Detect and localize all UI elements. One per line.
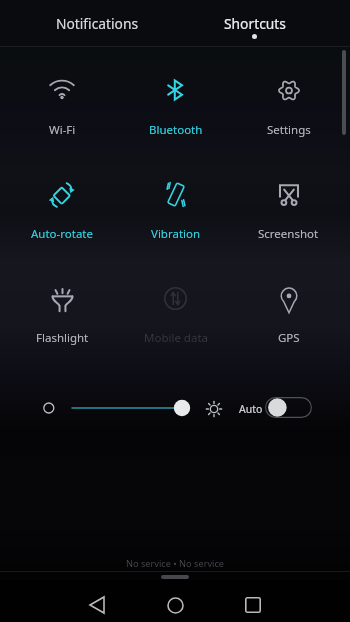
staticText: GPS xyxy=(278,330,300,346)
staticText: Screenshot xyxy=(258,226,319,242)
staticText: Shortcuts xyxy=(224,14,286,33)
button[interactable]: Screenshot xyxy=(232,166,345,252)
staticText: Auto xyxy=(239,402,263,416)
staticText: Mobile data xyxy=(144,330,208,346)
button[interactable]: Mobile data xyxy=(119,270,232,356)
button[interactable]: Bluetooth xyxy=(119,62,232,148)
staticText: Vibration xyxy=(151,226,201,242)
staticText: Settings xyxy=(267,122,311,138)
staticText: Flashlight xyxy=(36,330,89,346)
button[interactable]: Recents xyxy=(225,580,281,622)
staticText: No service • No service xyxy=(0,557,350,570)
staticText: Wi-Fi xyxy=(49,122,76,138)
button[interactable]: Vibration xyxy=(119,166,232,252)
staticText: Bluetooth xyxy=(149,122,203,138)
staticText: Auto-rotate xyxy=(31,226,93,242)
button[interactable]: Home xyxy=(147,580,203,622)
button[interactable]: Settings xyxy=(232,62,345,148)
button[interactable]: Auto brightness toggle xyxy=(265,397,312,418)
button[interactable]: Auto-rotate xyxy=(5,166,119,252)
button[interactable]: Wi-Fi xyxy=(5,62,119,148)
button[interactable]: Shortcuts xyxy=(176,0,333,47)
button[interactable]: Flashlight xyxy=(5,270,119,356)
button[interactable]: GPS xyxy=(232,270,345,356)
staticText: Notifications xyxy=(56,14,139,33)
button[interactable]: Brightness slider xyxy=(36,390,196,426)
button[interactable]: Back xyxy=(69,580,125,622)
button[interactable]: Notifications xyxy=(19,0,176,47)
